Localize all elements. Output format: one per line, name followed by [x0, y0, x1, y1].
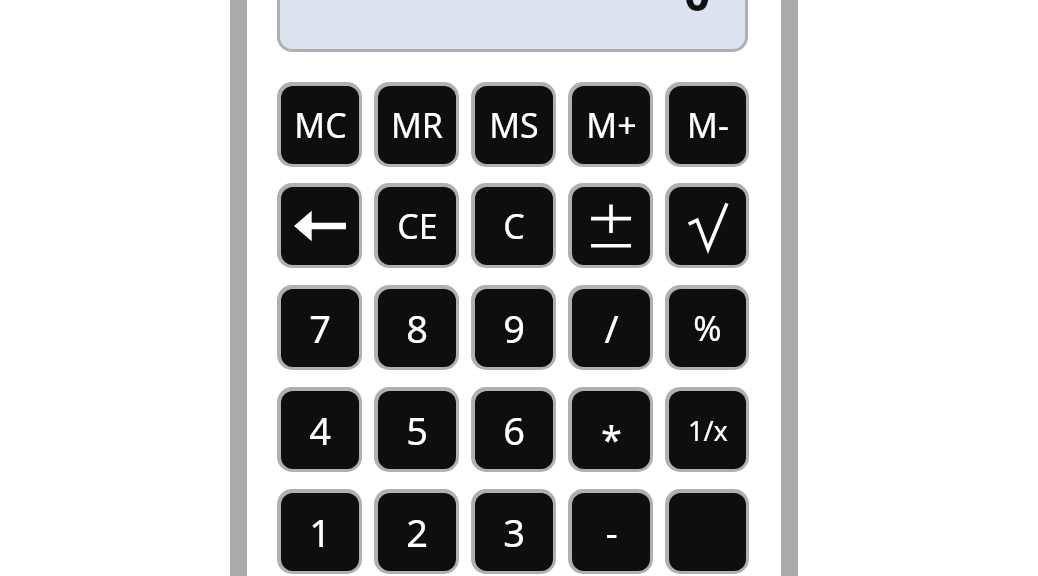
- staticText: %: [693, 305, 722, 351]
- staticText: 5: [406, 404, 428, 456]
- button[interactable]: C: [471, 183, 556, 268]
- button[interactable]: Square root: [665, 183, 749, 268]
- staticText: 1/x: [688, 412, 728, 449]
- staticText: -: [605, 506, 618, 558]
- staticText: *: [601, 413, 622, 465]
- button[interactable]: 9: [471, 285, 556, 370]
- button[interactable]: 7: [277, 285, 362, 370]
- button[interactable]: MC: [277, 82, 362, 167]
- button[interactable]: Plus minus: [568, 183, 653, 268]
- button[interactable]: 3: [471, 489, 556, 574]
- staticText: C: [503, 203, 525, 249]
- staticText: MC: [294, 102, 347, 148]
- staticText: 3: [503, 506, 525, 558]
- button[interactable]: 5: [374, 387, 459, 472]
- button[interactable]: Equals: [665, 489, 749, 574]
- button[interactable]: M+: [568, 82, 653, 167]
- button[interactable]: 4: [277, 387, 362, 472]
- button[interactable]: Backspace: [277, 183, 362, 268]
- button[interactable]: 1: [277, 489, 362, 574]
- button[interactable]: 8: [374, 285, 459, 370]
- button[interactable]: M-: [665, 82, 749, 167]
- button[interactable]: /: [568, 285, 653, 370]
- button[interactable]: %: [665, 285, 749, 370]
- staticText: MS: [489, 102, 539, 148]
- staticText: CE: [397, 203, 438, 249]
- staticText: 1: [309, 506, 331, 558]
- button[interactable]: MS: [471, 82, 556, 167]
- button[interactable]: CE: [374, 183, 459, 268]
- staticText: 0: [684, 0, 711, 25]
- staticText: 7: [309, 302, 331, 354]
- staticText: 9: [503, 302, 525, 354]
- staticText: M-: [687, 102, 729, 148]
- staticText: MR: [391, 102, 443, 148]
- staticText: /: [604, 302, 619, 354]
- button[interactable]: *: [568, 387, 653, 472]
- button[interactable]: 2: [374, 489, 459, 574]
- staticText: M+: [586, 102, 637, 148]
- button[interactable]: -: [568, 489, 653, 574]
- staticText: 2: [406, 506, 428, 558]
- staticText: 4: [309, 404, 331, 456]
- button[interactable]: MR: [374, 82, 459, 167]
- staticText: 8: [406, 302, 428, 354]
- button[interactable]: 1/x: [665, 387, 749, 472]
- staticText: 6: [503, 404, 525, 456]
- button[interactable]: 6: [471, 387, 556, 472]
